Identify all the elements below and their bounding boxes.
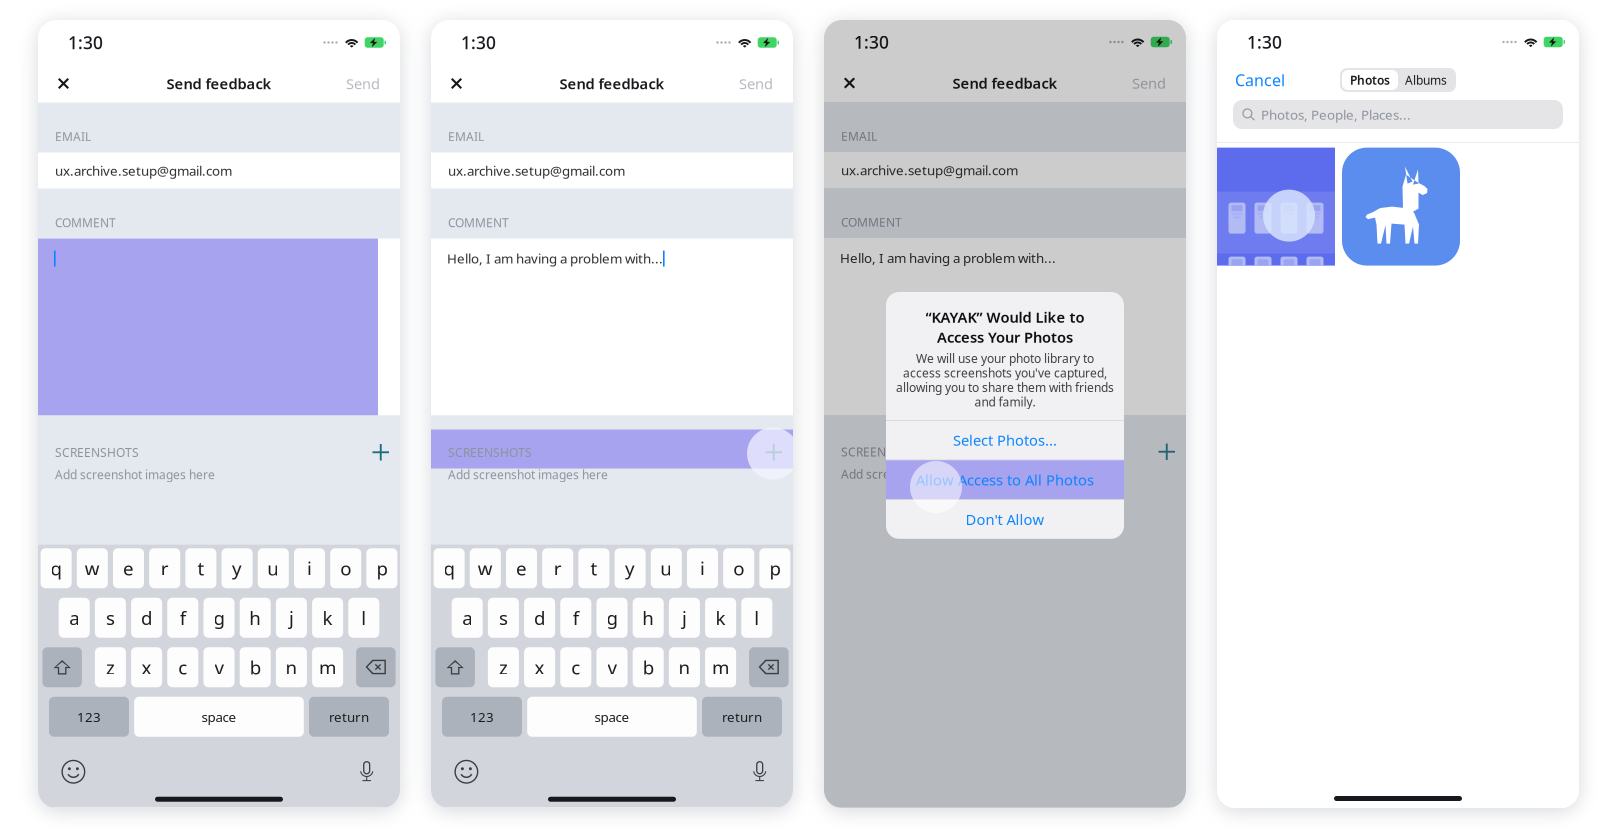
button[interactable]: Close: [451, 64, 495, 102]
button[interactable]: 123: [49, 697, 129, 737]
button[interactable]: 123: [442, 697, 522, 737]
button[interactable]: j: [276, 598, 307, 638]
button[interactable]: m: [312, 647, 343, 687]
button[interactable]: space: [134, 697, 304, 737]
button[interactable]: m: [705, 647, 736, 687]
staticText: q: [51, 556, 62, 581]
button[interactable]: Shift: [42, 647, 82, 687]
button[interactable]: o: [330, 548, 361, 588]
staticText: allowing you to share them with friends: [896, 379, 1114, 395]
staticText: x: [142, 655, 152, 680]
button[interactable]: Add screenshot: [765, 444, 782, 460]
button[interactable]: w: [470, 548, 501, 588]
button[interactable]: z: [488, 647, 519, 687]
button[interactable]: r: [542, 548, 573, 588]
button[interactable]: x: [131, 647, 162, 687]
staticText: o: [733, 556, 744, 581]
button[interactable]: return: [702, 697, 782, 737]
button[interactable]: space: [527, 697, 697, 737]
staticText: w: [85, 556, 100, 581]
button[interactable]: Screenshot photo: [1217, 148, 1335, 266]
button[interactable]: o: [723, 548, 754, 588]
button[interactable]: Dictate: [358, 759, 375, 784]
button[interactable]: b: [633, 647, 664, 687]
button[interactable]: i: [294, 548, 325, 588]
button[interactable]: g: [596, 598, 627, 638]
button[interactable]: w: [77, 548, 108, 588]
staticText: j: [682, 605, 687, 630]
staticText: COMMENT: [841, 214, 902, 230]
button[interactable]: Photos: [1342, 70, 1398, 90]
button[interactable]: t: [578, 548, 609, 588]
button[interactable]: Don't Allow: [886, 500, 1124, 539]
button[interactable]: f: [560, 598, 591, 638]
button[interactable]: Close: [844, 64, 888, 102]
button[interactable]: Add screenshot: [372, 444, 389, 460]
button[interactable]: n: [669, 647, 700, 687]
button[interactable]: l: [741, 598, 772, 638]
staticText: s: [106, 605, 115, 630]
button[interactable]: Emoji keyboard: [61, 759, 86, 784]
button[interactable]: s: [95, 598, 126, 638]
button[interactable]: d: [131, 598, 162, 638]
staticText: w: [478, 556, 493, 581]
button[interactable]: q: [434, 548, 465, 588]
button[interactable]: i: [687, 548, 718, 588]
button[interactable]: c: [167, 647, 198, 687]
button[interactable]: Shift: [435, 647, 475, 687]
staticText: e: [516, 556, 527, 581]
button[interactable]: a: [452, 598, 483, 638]
button[interactable]: return: [309, 697, 389, 737]
button[interactable]: Llama photo: [1342, 148, 1460, 266]
button[interactable]: p: [366, 548, 397, 588]
button[interactable]: v: [596, 647, 627, 687]
button[interactable]: Send: [1132, 64, 1166, 102]
button[interactable]: Dictate: [751, 759, 768, 784]
button[interactable]: k: [312, 598, 343, 638]
button[interactable]: z: [95, 647, 126, 687]
button[interactable]: h: [633, 598, 664, 638]
button[interactable]: p: [759, 548, 790, 588]
button[interactable]: n: [276, 647, 307, 687]
button[interactable]: j: [669, 598, 700, 638]
button[interactable]: h: [240, 598, 271, 638]
button[interactable]: b: [240, 647, 271, 687]
button[interactable]: r: [149, 548, 180, 588]
button[interactable]: Send: [346, 64, 380, 102]
button[interactable]: x: [524, 647, 555, 687]
staticText: COMMENT: [55, 215, 116, 230]
button[interactable]: s: [488, 598, 519, 638]
staticText: Access Your Photos: [937, 327, 1073, 347]
button[interactable]: Cancel: [1235, 64, 1305, 96]
button[interactable]: Close: [58, 64, 102, 102]
button[interactable]: c: [560, 647, 591, 687]
button[interactable]: Emoji keyboard: [454, 759, 479, 784]
button[interactable]: q: [41, 548, 72, 588]
button[interactable]: Send: [739, 64, 773, 102]
button[interactable]: f: [167, 598, 198, 638]
button[interactable]: Select Photos...: [886, 421, 1124, 460]
button[interactable]: Delete: [749, 647, 789, 687]
staticText: Albums: [1405, 72, 1447, 88]
button[interactable]: u: [258, 548, 289, 588]
button[interactable]: Delete: [356, 647, 396, 687]
button[interactable]: t: [185, 548, 216, 588]
button[interactable]: Allow Access to All Photos: [886, 460, 1124, 499]
button[interactable]: v: [203, 647, 234, 687]
button[interactable]: e: [506, 548, 537, 588]
button[interactable]: Albums: [1398, 70, 1454, 90]
staticText: q: [444, 556, 455, 581]
button[interactable]: Add screenshot: [1158, 443, 1175, 460]
button[interactable]: d: [524, 598, 555, 638]
staticText: i: [700, 556, 705, 581]
button[interactable]: g: [203, 598, 234, 638]
staticText: p: [376, 556, 387, 581]
button[interactable]: u: [651, 548, 682, 588]
button[interactable]: y: [222, 548, 253, 588]
button[interactable]: l: [348, 598, 379, 638]
staticText: a: [462, 605, 472, 630]
button[interactable]: k: [705, 598, 736, 638]
button[interactable]: e: [113, 548, 144, 588]
button[interactable]: y: [615, 548, 646, 588]
button[interactable]: a: [59, 598, 90, 638]
